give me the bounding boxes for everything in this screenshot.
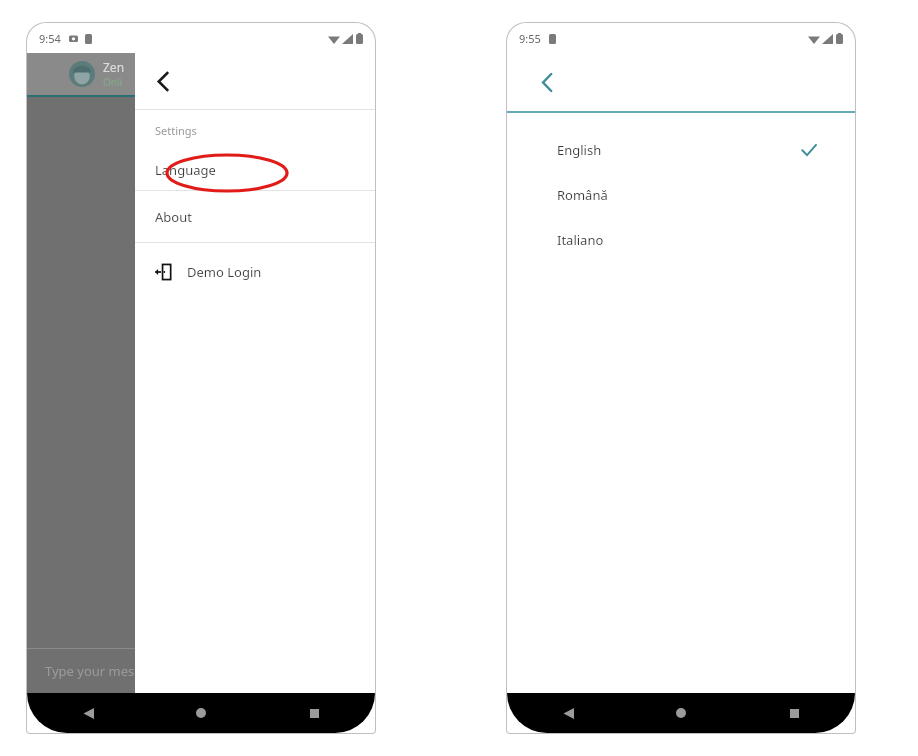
button[interactable]: Italiano	[507, 217, 855, 262]
button[interactable]: Back	[71, 696, 105, 730]
button[interactable]: Recents	[777, 696, 811, 730]
button[interactable]: About	[135, 191, 375, 242]
button[interactable]: Home	[664, 696, 698, 730]
staticText: Onli	[103, 75, 123, 89]
staticText: 9:55	[519, 31, 541, 46]
staticText: Type your message	[45, 662, 164, 680]
staticText: Zen	[103, 59, 125, 75]
button[interactable]: Back	[527, 62, 567, 102]
staticText: English	[557, 141, 602, 159]
staticText: Settings	[155, 123, 197, 138]
staticText: About	[155, 208, 192, 226]
staticText: Română	[557, 186, 608, 204]
staticText: Italiano	[557, 231, 604, 249]
button[interactable]: Recents	[297, 696, 331, 730]
button[interactable]: Română	[507, 172, 855, 217]
staticText: Language	[155, 161, 216, 179]
button[interactable]: Demo Login	[135, 243, 375, 301]
button[interactable]: Language	[135, 150, 375, 190]
button[interactable]: Back	[551, 696, 585, 730]
button[interactable]: Back	[143, 61, 183, 101]
button[interactable]: Home	[184, 696, 218, 730]
staticText: 9:54	[39, 31, 61, 46]
staticText: Demo Login	[187, 263, 262, 281]
button[interactable]: English	[507, 127, 855, 172]
